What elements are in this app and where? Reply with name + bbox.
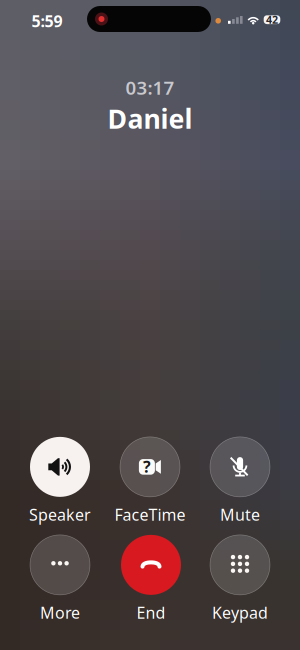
staticText: FaceTime bbox=[114, 504, 185, 525]
button[interactable]: Mute bbox=[198, 437, 282, 525]
button[interactable]: End bbox=[109, 535, 193, 623]
staticText: More bbox=[40, 602, 80, 623]
staticText: Daniel bbox=[107, 101, 192, 136]
staticText: End bbox=[136, 602, 165, 623]
button[interactable]: ? bbox=[108, 437, 192, 525]
staticText: 5:59 bbox=[31, 10, 62, 32]
staticText: 42 bbox=[266, 12, 278, 27]
staticText: ? bbox=[143, 456, 151, 477]
staticText: 03:17 bbox=[125, 75, 174, 100]
staticText: Keypad bbox=[212, 602, 268, 623]
staticText: Speaker bbox=[29, 504, 91, 525]
button[interactable]: Speaker bbox=[18, 437, 102, 525]
staticText: Mute bbox=[220, 504, 260, 525]
button[interactable]: Keypad bbox=[198, 535, 282, 623]
button[interactable]: More bbox=[18, 535, 102, 623]
